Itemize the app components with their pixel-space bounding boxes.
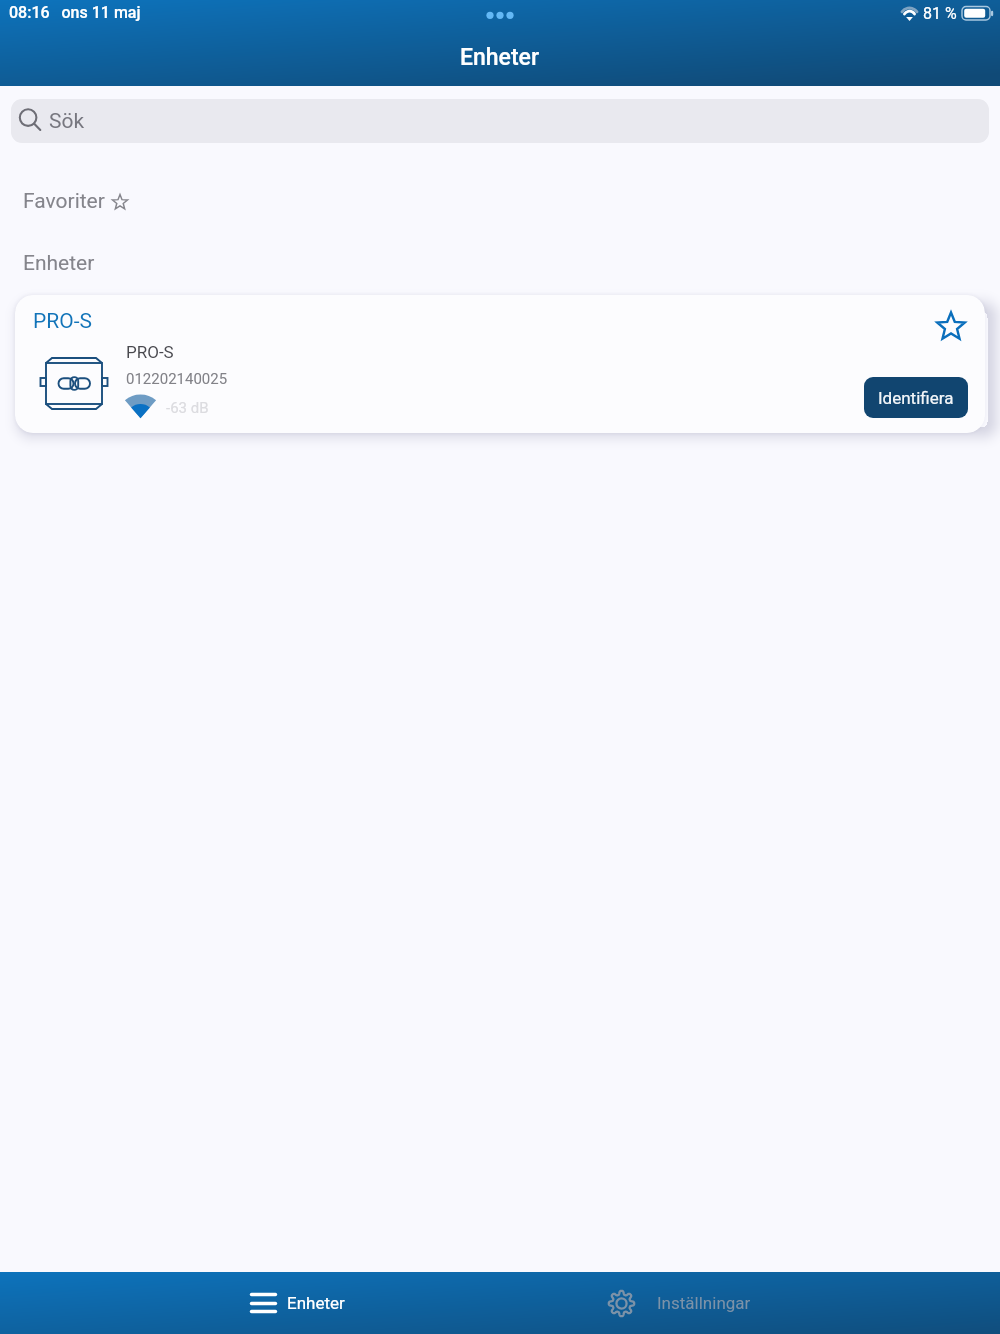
staticText: 81 % (923, 4, 957, 23)
button[interactable]: Favoriter (23, 189, 128, 214)
staticText: 08:16 ons 11 maj (9, 3, 141, 22)
staticText: Enheter (23, 251, 95, 276)
other: Search (19, 109, 43, 133)
button[interactable]: Inställningar (500, 1272, 1000, 1334)
staticText: PRO-S (126, 342, 174, 362)
staticText: 012202140025 (126, 370, 228, 388)
staticText: Identifiera (878, 388, 954, 408)
staticText: -63 dB (166, 399, 209, 417)
staticText: Enheter (460, 44, 540, 71)
button[interactable]: PRO-S (15, 295, 985, 433)
button[interactable]: Identifiera (864, 377, 968, 418)
staticText: Sök (49, 109, 85, 134)
staticText: PRO-S (33, 309, 92, 334)
staticText: Favoriter (23, 189, 105, 214)
button[interactable]: Search (11, 99, 989, 143)
button[interactable]: Add to favourites (929, 305, 973, 349)
staticText: Inställningar (657, 1293, 751, 1313)
staticText: Enheter (287, 1293, 345, 1313)
button[interactable]: Enheter (0, 1272, 500, 1334)
